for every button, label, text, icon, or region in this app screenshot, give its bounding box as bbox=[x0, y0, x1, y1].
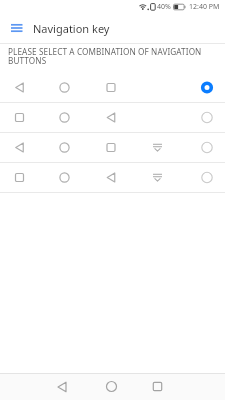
button[interactable] bbox=[6, 17, 27, 38]
staticText: 12:40 PM bbox=[189, 2, 220, 12]
button[interactable] bbox=[0, 73, 225, 103]
button[interactable] bbox=[89, 373, 133, 400]
button[interactable] bbox=[0, 163, 225, 193]
button[interactable] bbox=[135, 373, 179, 400]
staticText: Navigation key bbox=[33, 21, 110, 36]
staticText: 40% bbox=[157, 2, 171, 12]
button[interactable] bbox=[0, 133, 225, 163]
staticText: PLEASE SELECT A COMBINATION OF NAVIGATIO… bbox=[8, 46, 202, 67]
button[interactable] bbox=[40, 373, 84, 400]
button[interactable] bbox=[0, 103, 225, 133]
